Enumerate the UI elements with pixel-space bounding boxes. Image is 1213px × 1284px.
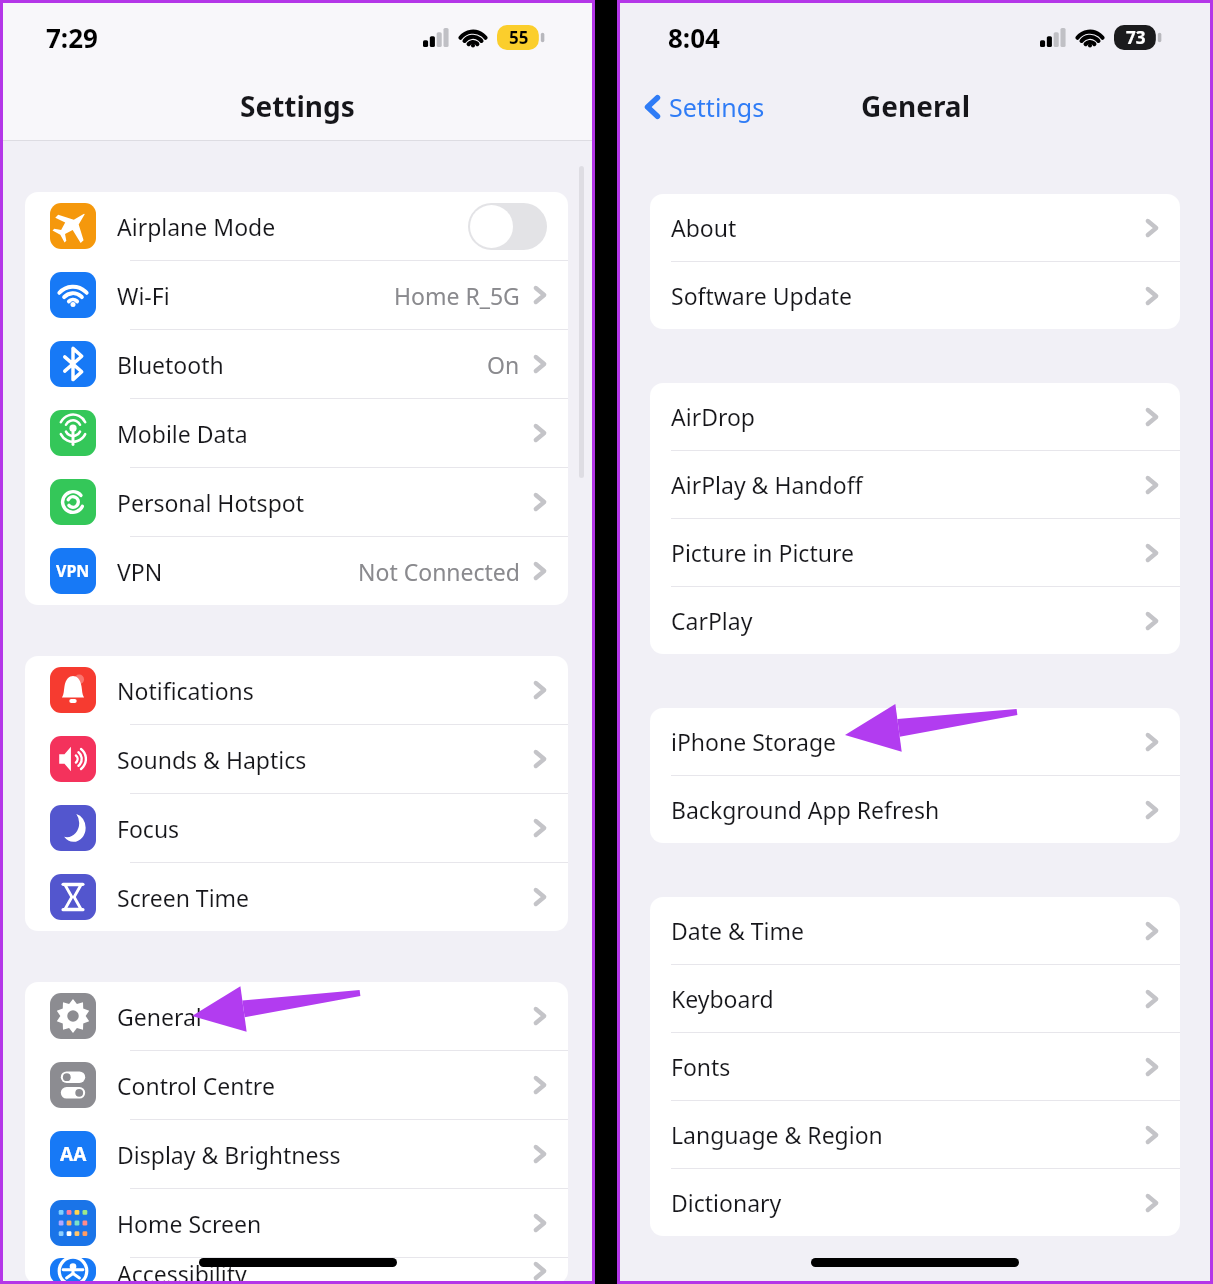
button[interactable]: VPN: [25, 537, 568, 605]
button[interactable]: Software Update: [650, 262, 1180, 329]
staticText: Mobile Data: [117, 418, 248, 449]
staticText: Language & Region: [671, 1119, 883, 1150]
button[interactable]: iPhone Storage: [650, 708, 1180, 775]
staticText: Personal Hotspot: [117, 487, 304, 518]
staticText: Picture in Picture: [671, 537, 854, 568]
staticText: AirDrop: [671, 401, 756, 432]
staticText: Display & Brightness: [117, 1139, 341, 1170]
staticText: General: [861, 87, 970, 125]
button[interactable]: AirPlay & Handoff: [650, 451, 1180, 518]
staticText: AA: [60, 1141, 87, 1167]
staticText: About: [671, 212, 737, 243]
staticText: AirPlay & Handoff: [671, 469, 863, 500]
button[interactable]: Control Centre: [25, 1051, 568, 1119]
button[interactable]: AA: [25, 1120, 568, 1188]
staticText: Focus: [117, 813, 180, 844]
staticText: VPN: [56, 560, 90, 582]
staticText: On: [487, 349, 520, 380]
staticText: Screen Time: [117, 882, 250, 913]
button[interactable]: Airplane Mode: [25, 192, 568, 260]
button[interactable]: Language & Region: [650, 1101, 1180, 1168]
staticText: 55: [509, 26, 529, 49]
button[interactable]: Date & Time: [650, 897, 1180, 964]
button[interactable]: Background App Refresh: [650, 776, 1180, 843]
staticText: Date & Time: [671, 915, 804, 946]
staticText: Control Centre: [117, 1070, 275, 1101]
button[interactable]: CarPlay: [650, 587, 1180, 654]
staticText: Wi-Fi: [117, 280, 170, 311]
staticText: Home R_5G: [394, 280, 520, 311]
button[interactable]: Personal Hotspot: [25, 468, 568, 536]
staticText: Settings: [669, 90, 765, 124]
button[interactable]: Accessibility: [25, 1258, 568, 1284]
staticText: General: [117, 1001, 202, 1032]
staticText: 73: [1126, 26, 1146, 49]
staticText: Keyboard: [671, 983, 774, 1014]
button[interactable]: Bluetooth: [25, 330, 568, 398]
staticText: Software Update: [671, 280, 853, 311]
button[interactable]: Keyboard: [650, 965, 1180, 1032]
staticText: 8:04: [668, 20, 720, 54]
staticText: Background App Refresh: [671, 794, 940, 825]
other: Back to Settings: [643, 92, 662, 122]
staticText: CarPlay: [671, 605, 753, 636]
staticText: Home Screen: [117, 1208, 262, 1239]
button[interactable]: AirDrop: [650, 383, 1180, 450]
button[interactable]: Mobile Data: [25, 399, 568, 467]
button[interactable]: General: [25, 982, 568, 1050]
button[interactable]: Focus: [25, 794, 568, 862]
button[interactable]: Screen Time: [25, 863, 568, 931]
staticText: Fonts: [671, 1051, 731, 1082]
button[interactable]: About: [650, 194, 1180, 261]
button[interactable]: Dictionary: [650, 1169, 1180, 1236]
button[interactable]: Fonts: [650, 1033, 1180, 1100]
staticText: Airplane Mode: [117, 211, 276, 242]
button[interactable]: Notifications: [25, 656, 568, 724]
button[interactable]: Sounds & Haptics: [25, 725, 568, 793]
button[interactable]: Picture in Picture: [650, 519, 1180, 586]
button[interactable]: Wi-Fi: [25, 261, 568, 329]
staticText: 7:29: [46, 20, 98, 54]
staticText: VPN: [117, 556, 163, 587]
staticText: Notifications: [117, 675, 254, 706]
button[interactable]: Home Screen: [25, 1189, 568, 1257]
button[interactable]: Airplane Mode toggle: [468, 203, 547, 250]
button[interactable]: Back to Settings: [637, 87, 771, 127]
staticText: Not Connected: [358, 556, 520, 587]
staticText: iPhone Storage: [671, 726, 837, 757]
staticText: Sounds & Haptics: [117, 744, 307, 775]
staticText: Dictionary: [671, 1187, 782, 1218]
staticText: Accessibility: [117, 1258, 247, 1284]
staticText: Settings: [240, 87, 355, 125]
staticText: Bluetooth: [117, 349, 224, 380]
